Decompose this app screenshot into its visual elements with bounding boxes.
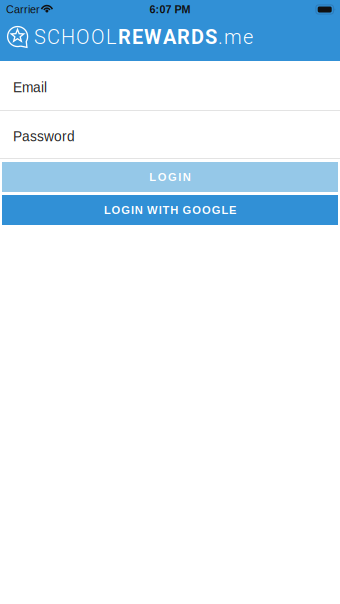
- staticText: R: [118, 25, 131, 49]
- staticText: L: [221, 204, 228, 216]
- staticText: e: [243, 25, 253, 49]
- staticText: O: [76, 25, 90, 49]
- staticText: H: [61, 25, 75, 49]
- staticText: G: [212, 204, 221, 216]
- staticText: Carrier: [6, 3, 40, 16]
- staticText: D: [191, 25, 204, 49]
- staticText: G: [121, 204, 130, 216]
- staticText: L: [149, 171, 156, 183]
- staticText: S: [34, 25, 46, 49]
- staticText: S: [205, 25, 217, 49]
- staticText: C: [47, 25, 60, 49]
- staticText: .: [218, 25, 223, 49]
- staticText: I: [178, 171, 181, 183]
- staticText: G: [183, 204, 192, 216]
- button[interactable]: Password: [0, 111, 340, 158]
- staticText: G: [168, 171, 177, 183]
- staticText: O: [112, 204, 121, 216]
- staticText: Email: [13, 80, 47, 95]
- staticText: O: [202, 204, 211, 216]
- staticText: N: [135, 204, 143, 216]
- staticText: A: [163, 25, 176, 49]
- staticText: H: [170, 204, 178, 216]
- staticText: Password: [13, 129, 75, 144]
- button[interactable]: Email: [0, 61, 340, 110]
- staticText: E: [229, 204, 236, 216]
- staticText: O: [158, 171, 167, 183]
- staticText: O: [192, 204, 201, 216]
- staticText: 6:07 PM: [149, 3, 190, 16]
- staticText: E: [132, 25, 143, 49]
- staticText: I: [131, 204, 134, 216]
- staticText: m: [224, 25, 242, 49]
- staticText: L: [104, 204, 111, 216]
- staticText: O: [91, 25, 105, 49]
- staticText: R: [177, 25, 190, 49]
- button[interactable]: L: [0, 195, 340, 225]
- staticText: N: [183, 171, 191, 183]
- staticText: L: [106, 25, 117, 49]
- staticText: T: [162, 204, 169, 216]
- staticText: W: [147, 204, 158, 216]
- staticText: W: [144, 25, 162, 49]
- staticText: I: [159, 204, 162, 216]
- button[interactable]: L: [0, 162, 340, 192]
